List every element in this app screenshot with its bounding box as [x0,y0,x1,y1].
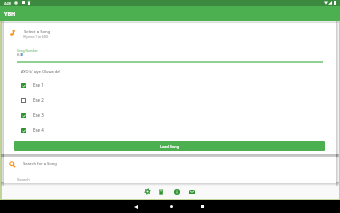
button[interactable]: About [171,186,182,197]
staticText: 63 [17,52,22,58]
button[interactable]: Ese 3 [17,109,67,121]
staticText: Ese 1 [33,82,44,88]
button[interactable]: Ese 4 [17,124,67,136]
staticText: (Hymns 1 to 660) [23,35,49,39]
button[interactable]: Settings [142,186,153,197]
staticText: Ese 3 [33,112,44,118]
button[interactable]: Ese 1 [17,79,67,91]
staticText: Search for a Song [23,161,57,167]
button[interactable]: Load Song [14,141,325,151]
button[interactable]: Home [154,200,188,213]
staticText: AYO b' aiye Oluwa de! [21,69,61,74]
button[interactable]: Ese 2 [17,94,67,106]
button[interactable]: Back [119,200,153,213]
staticText: Ese 2 [33,97,44,103]
staticText: Load Song [160,144,180,149]
staticText: Search [17,177,30,182]
button[interactable]: Search for a Song [4,157,336,183]
staticText: 4:28 [4,1,11,6]
staticText: Song Number [17,49,38,53]
staticText: Select a Song [24,29,51,35]
button[interactable]: Contact [186,186,197,197]
staticText: Ese 4 [33,127,44,133]
staticText: YBH [4,10,16,17]
button[interactable]: Recent apps [185,200,219,213]
button[interactable]: Hymn book [155,186,166,197]
